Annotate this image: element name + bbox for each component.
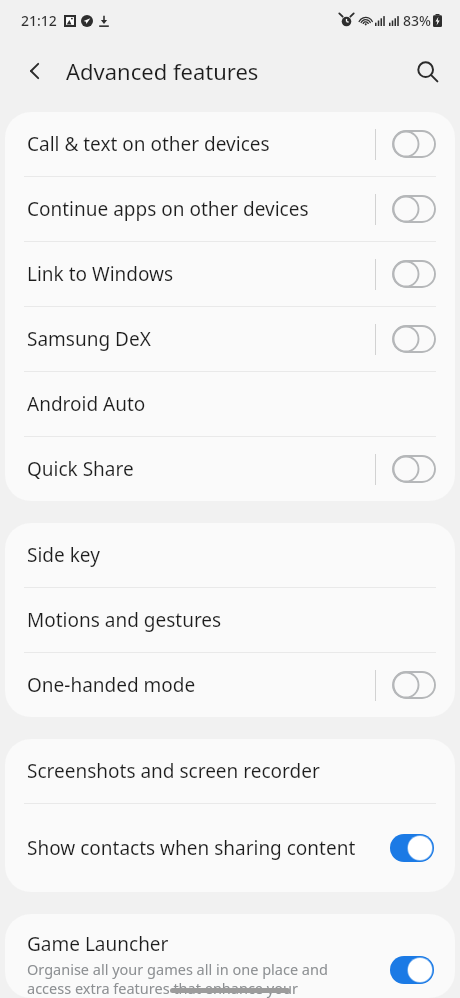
button[interactable]: Call & text on other devices bbox=[5, 112, 455, 176]
button[interactable]: Motions and gestures bbox=[5, 588, 455, 652]
button[interactable]: Quick Share bbox=[5, 437, 455, 501]
staticText: 21:12 bbox=[21, 11, 57, 30]
button[interactable]: Samsung DeX bbox=[5, 307, 455, 371]
staticText: Organise all your games all in one place… bbox=[27, 959, 372, 998]
button[interactable]: Screenshots and screen recorder bbox=[5, 739, 455, 803]
staticText: Screenshots and screen recorder bbox=[27, 758, 438, 784]
button[interactable]: Back bbox=[13, 49, 57, 93]
staticText: 83% bbox=[403, 11, 431, 30]
staticText: Link to Windows bbox=[27, 261, 375, 287]
button[interactable]: Show contacts when sharing content bbox=[5, 804, 455, 892]
staticText: Side key bbox=[27, 542, 438, 568]
staticText: Continue apps on other devices bbox=[27, 196, 375, 222]
button[interactable]: One-handed mode bbox=[5, 653, 455, 717]
button[interactable]: Toggle off bbox=[390, 192, 438, 226]
button[interactable]: Link to Windows bbox=[5, 242, 455, 306]
button[interactable]: Toggle on bbox=[386, 953, 438, 987]
staticText: Advanced features bbox=[66, 56, 259, 86]
staticText: Samsung DeX bbox=[27, 326, 375, 352]
button[interactable]: Toggle off bbox=[390, 322, 438, 356]
button[interactable]: Toggle off bbox=[390, 257, 438, 291]
button[interactable]: Toggle on bbox=[386, 831, 438, 865]
staticText: Motions and gestures bbox=[27, 607, 438, 633]
button[interactable]: Side key bbox=[5, 523, 455, 587]
staticText: Game Launcher bbox=[27, 931, 169, 957]
staticText: Android Auto bbox=[27, 391, 438, 417]
button[interactable]: Game Launcher bbox=[5, 914, 455, 998]
button[interactable]: Toggle off bbox=[390, 668, 438, 702]
button[interactable]: Continue apps on other devices bbox=[5, 177, 455, 241]
button[interactable]: Toggle off bbox=[390, 127, 438, 161]
button[interactable]: Toggle off bbox=[390, 452, 438, 486]
staticText: Show contacts when sharing content bbox=[27, 835, 360, 861]
staticText: Call & text on other devices bbox=[27, 131, 375, 157]
button[interactable]: Search bbox=[405, 49, 449, 93]
staticText: Quick Share bbox=[27, 456, 375, 482]
staticText: One-handed mode bbox=[27, 672, 375, 698]
button[interactable]: Android Auto bbox=[5, 372, 455, 436]
